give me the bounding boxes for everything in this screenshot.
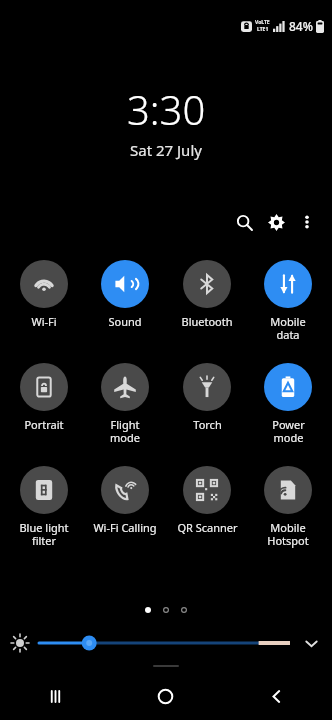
button[interactable]: Power mode	[250, 361, 326, 445]
staticText: Wi-Fi Calling	[93, 520, 157, 535]
button[interactable]: Portrait	[6, 361, 82, 432]
button[interactable]: Recent apps	[0, 672, 110, 720]
button[interactable]: Mobile Hotspot	[250, 464, 326, 548]
staticText: QR Scanner	[177, 520, 238, 535]
staticText: Bluetooth	[181, 314, 233, 329]
button[interactable]: Wi-Fi	[6, 258, 82, 329]
button[interactable]: Sound	[87, 258, 163, 329]
button[interactable]: More options	[292, 207, 322, 237]
staticText: Mobile data	[270, 314, 306, 342]
staticText: Torch	[193, 417, 222, 432]
staticText: Mobile Hotspot	[267, 520, 309, 548]
button[interactable]: Settings	[260, 206, 292, 238]
button[interactable]: Flight mode	[87, 361, 163, 445]
button[interactable]: Mobile data	[250, 258, 326, 342]
staticText: Sat 27 July	[130, 140, 202, 160]
button[interactable]: Wi-Fi Calling	[87, 464, 163, 535]
button[interactable]: Search	[228, 206, 260, 238]
staticText: 3:30	[127, 82, 206, 136]
staticText: Power mode	[272, 417, 305, 445]
staticText: VoLTE	[255, 19, 270, 26]
staticText: 84%	[289, 18, 313, 34]
button[interactable]: QR Scanner	[169, 464, 245, 535]
button[interactable]: Torch	[169, 361, 245, 432]
button[interactable]: Home	[110, 672, 221, 720]
button[interactable]	[39, 630, 290, 656]
staticText: Blue light filter	[19, 520, 69, 548]
button[interactable]: Blue light filter	[6, 464, 82, 548]
staticText: Flight mode	[110, 417, 140, 445]
button[interactable]: Expand brightness settings	[298, 630, 324, 656]
button[interactable]: Bluetooth	[169, 258, 245, 329]
button[interactable]: Back	[221, 672, 332, 720]
staticText: Wi-Fi	[31, 314, 57, 329]
staticText: Portrait	[24, 417, 64, 432]
staticText: Sound	[108, 314, 142, 329]
staticText: LTE1	[257, 26, 269, 33]
